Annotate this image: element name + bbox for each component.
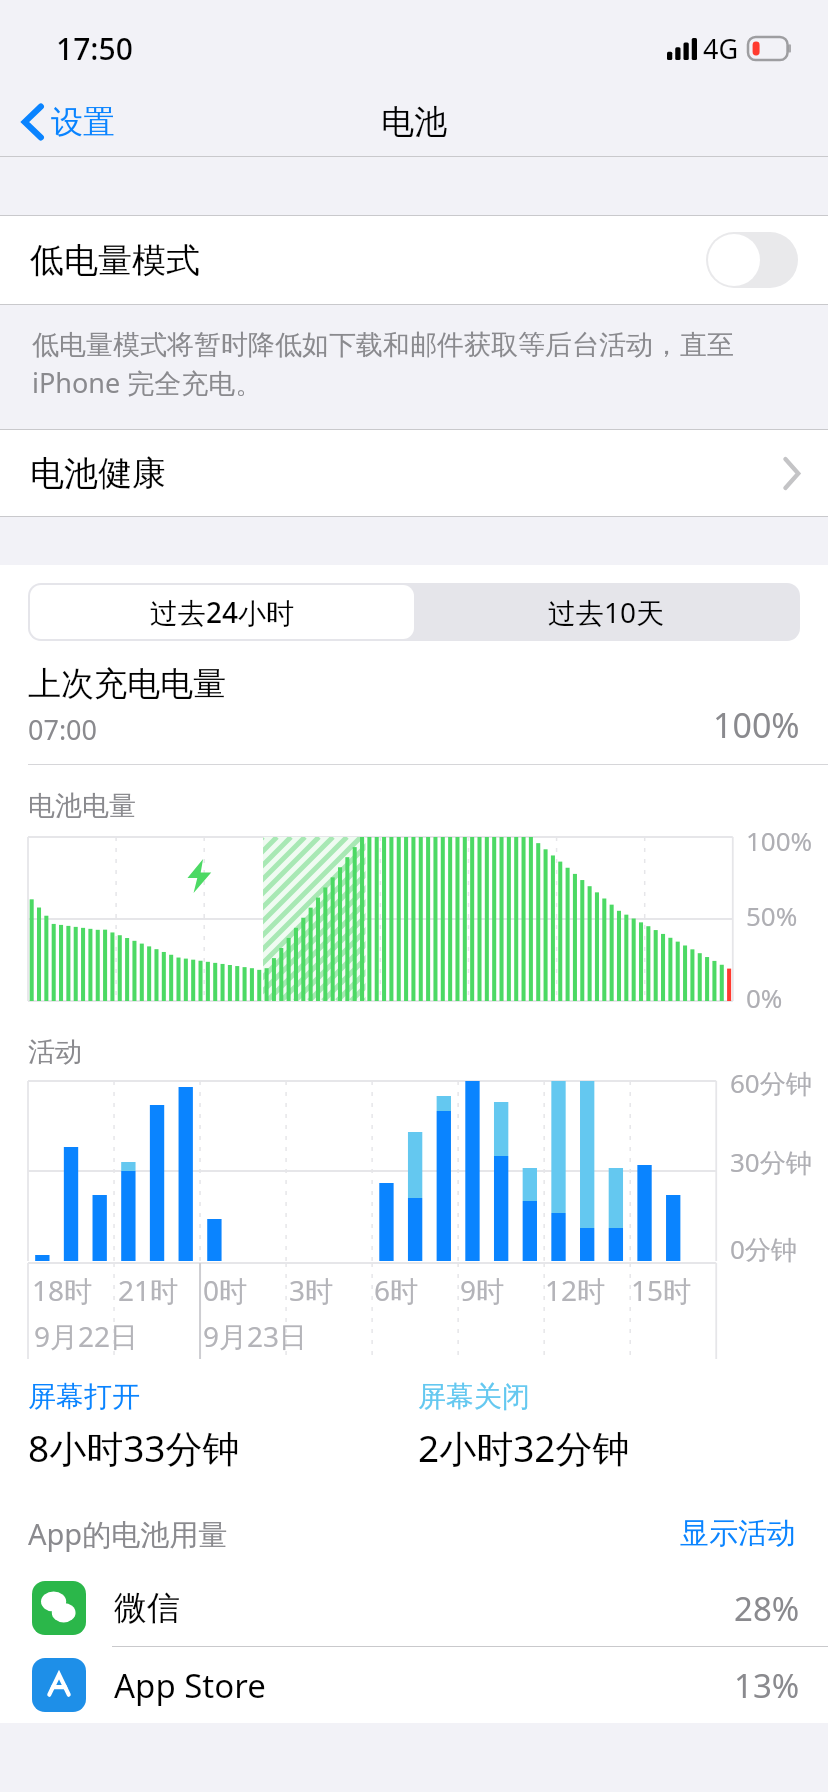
staticText: 电池电量	[28, 789, 136, 823]
staticText: 屏幕打开	[28, 1379, 140, 1414]
staticText: 9月23日	[203, 1317, 308, 1355]
staticText: 0分钟	[730, 1231, 797, 1267]
staticText: 0%	[746, 980, 783, 1015]
staticText: 21时	[118, 1271, 179, 1309]
staticText: App Store	[114, 1663, 734, 1708]
staticText: 50%	[746, 898, 798, 933]
button[interactable]: 设置	[16, 96, 121, 148]
staticText: 3时	[289, 1271, 334, 1309]
staticText: 过去24小时	[150, 593, 295, 631]
staticText: 上次充电电量	[28, 663, 226, 705]
button[interactable]: 电池健康	[0, 430, 828, 516]
staticText: 微信	[114, 1587, 734, 1629]
staticText: 显示活动	[680, 1515, 796, 1552]
button[interactable]: 显示活动	[676, 1511, 800, 1556]
staticText: 屏幕关闭	[418, 1379, 530, 1414]
staticText: 17:50	[56, 28, 133, 69]
staticText: 100%	[746, 823, 813, 858]
staticText: 电池健康	[30, 452, 783, 495]
button[interactable]: App Store	[0, 1647, 828, 1723]
staticText: 13%	[734, 1663, 800, 1708]
staticText: 100%	[713, 702, 800, 748]
staticText: 30分钟	[730, 1144, 812, 1180]
staticText: 过去10天	[548, 593, 665, 631]
button[interactable]: 过去24小时	[30, 585, 414, 639]
staticText: 60分钟	[730, 1065, 812, 1101]
staticText: 4G	[703, 30, 739, 67]
staticText: 6时	[374, 1271, 419, 1309]
button[interactable]: 过去10天	[414, 585, 798, 639]
staticText: 9月22日	[34, 1317, 139, 1355]
staticText: 电池	[381, 101, 447, 143]
staticText: 低电量模式	[30, 239, 706, 282]
staticText: 07:00	[28, 711, 98, 748]
staticText: 0时	[203, 1271, 248, 1309]
staticText: 12时	[545, 1271, 606, 1309]
staticText: 28%	[734, 1586, 800, 1631]
staticText: 设置	[51, 102, 115, 142]
button[interactable]: Low Power Mode toggle	[706, 232, 798, 288]
button[interactable]: 微信	[0, 1570, 828, 1646]
staticText: App的电池用量	[28, 1514, 676, 1554]
staticText: 9时	[460, 1271, 505, 1309]
staticText: 15时	[631, 1271, 692, 1309]
staticText: 活动	[28, 1035, 82, 1069]
staticText: 18时	[32, 1271, 93, 1309]
staticText: 2小时32分钟	[418, 1422, 630, 1473]
button[interactable]: 低电量模式	[0, 216, 828, 304]
staticText: 低电量模式将暂时降低如下载和邮件获取等后台活动，直至 iPhone 完全充电。	[32, 325, 782, 401]
staticText: 8小时33分钟	[28, 1422, 240, 1473]
